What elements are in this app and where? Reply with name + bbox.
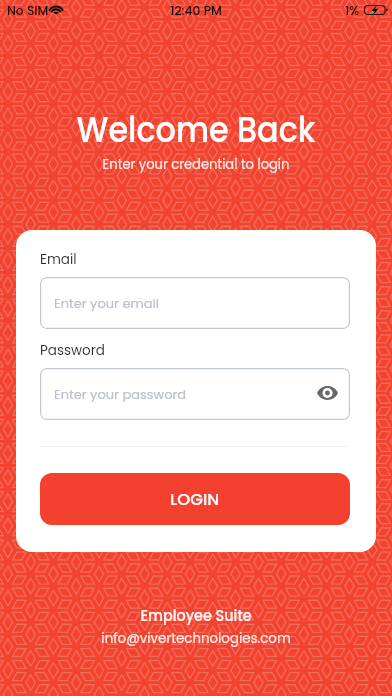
staticText: 12:40 PM xyxy=(0,2,392,19)
staticText: Enter your password xyxy=(54,385,187,403)
staticText: info@vivertechnologies.com xyxy=(22,627,370,648)
staticText: Enter your email xyxy=(54,294,160,312)
button[interactable]: Enter your email xyxy=(40,277,350,329)
staticText: Enter your credential to login xyxy=(25,153,366,174)
staticText: 1% xyxy=(345,2,360,19)
button[interactable]: LOGIN xyxy=(40,473,350,525)
button[interactable]: Enter your password xyxy=(40,368,350,420)
staticText: No SIM xyxy=(7,2,49,19)
staticText: Employee Suite xyxy=(20,604,372,626)
staticText: Email xyxy=(40,250,77,269)
staticText: Welcome Back xyxy=(22,104,369,154)
staticText: LOGIN xyxy=(170,488,220,511)
staticText: Password xyxy=(40,341,105,360)
button[interactable]: Show password xyxy=(311,377,343,409)
